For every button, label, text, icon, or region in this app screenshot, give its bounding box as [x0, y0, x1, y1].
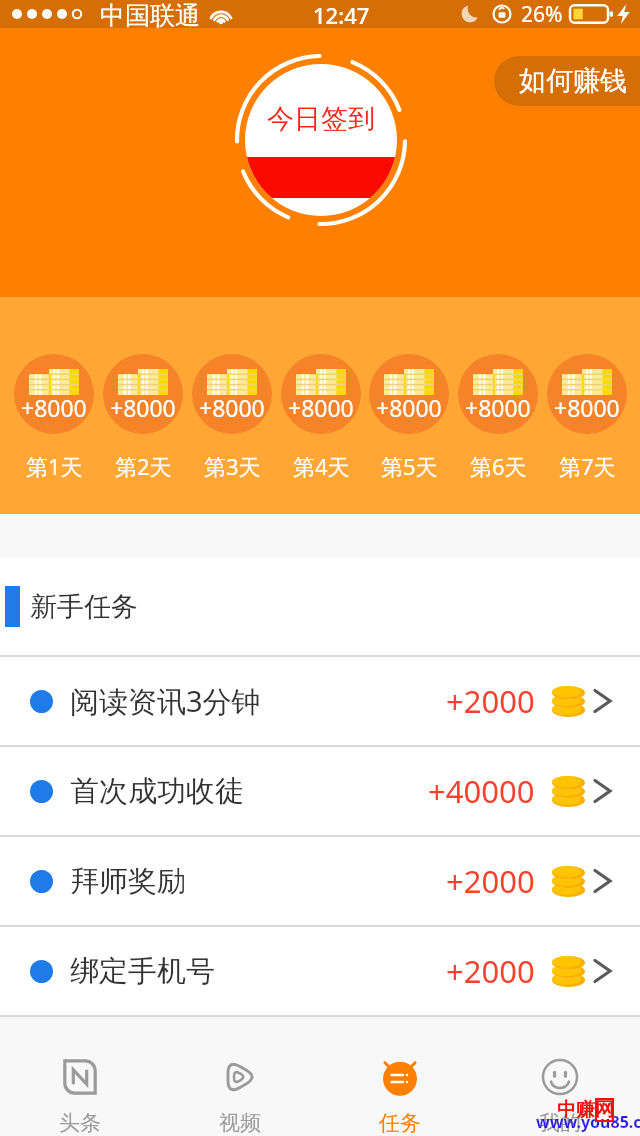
button[interactable]: +8000 — [14, 354, 94, 481]
staticText: +2000 — [446, 950, 535, 992]
button[interactable]: 如何赚钱 — [494, 56, 640, 106]
button[interactable]: +8000 — [103, 354, 183, 481]
staticText: +8000 — [288, 392, 354, 423]
staticText: 网 — [595, 1098, 614, 1122]
button[interactable]: 阅读资讯3分钟 — [0, 657, 640, 745]
staticText: +8000 — [110, 392, 176, 423]
staticText: +2000 — [446, 680, 535, 722]
staticText: +40000 — [428, 770, 535, 812]
button[interactable]: +8000 — [369, 354, 449, 481]
staticText: 第2天 — [115, 451, 172, 481]
staticText: +8000 — [199, 392, 265, 423]
staticText: 我的 — [539, 1110, 581, 1136]
staticText: +8000 — [376, 392, 442, 423]
staticText: 首次成功收徒 — [70, 773, 244, 810]
button[interactable]: 绑定手机号 — [0, 927, 640, 1015]
staticText: 拜师奖励 — [70, 863, 186, 900]
button[interactable]: 首次成功收徒 — [0, 747, 640, 835]
staticText: 第5天 — [381, 451, 438, 481]
button[interactable]: 今日签到 — [245, 64, 397, 216]
staticText: 中赚 — [557, 1098, 595, 1122]
button[interactable]: +8000 — [281, 354, 361, 481]
staticText: 绑定手机号 — [70, 953, 215, 990]
staticText: 头条 — [59, 1110, 101, 1136]
staticText: 第7天 — [559, 451, 616, 481]
button[interactable]: 我的 — [480, 1017, 640, 1136]
staticText: +2000 — [446, 860, 535, 902]
button[interactable]: 视频 — [160, 1017, 320, 1136]
staticText: 26% — [521, 0, 563, 28]
staticText: 阅读资讯3分钟 — [70, 681, 261, 721]
staticText: 第1天 — [26, 451, 83, 481]
staticText: 第3天 — [204, 451, 261, 481]
button[interactable]: 任务 — [320, 1017, 480, 1136]
staticText: 新手任务 — [30, 590, 138, 624]
staticText: 第4天 — [293, 451, 350, 481]
staticText: 今日签到 — [267, 102, 375, 136]
button[interactable]: 头条 — [0, 1017, 160, 1136]
staticText: 视频 — [219, 1110, 261, 1136]
staticText: www.you85.com — [536, 1111, 640, 1133]
staticText: 12:47 — [313, 0, 370, 28]
staticText: 如何赚钱 — [519, 64, 627, 98]
button[interactable]: 拜师奖励 — [0, 837, 640, 925]
staticText: +8000 — [465, 392, 531, 423]
button[interactable]: +8000 — [547, 354, 627, 481]
staticText: 中国联通 — [100, 0, 200, 28]
button[interactable]: +8000 — [192, 354, 272, 481]
button[interactable]: +8000 — [458, 354, 538, 481]
staticText: +8000 — [21, 392, 87, 423]
staticText: +8000 — [554, 392, 620, 423]
staticText: 任务 — [379, 1110, 421, 1136]
staticText: 第6天 — [470, 451, 527, 481]
